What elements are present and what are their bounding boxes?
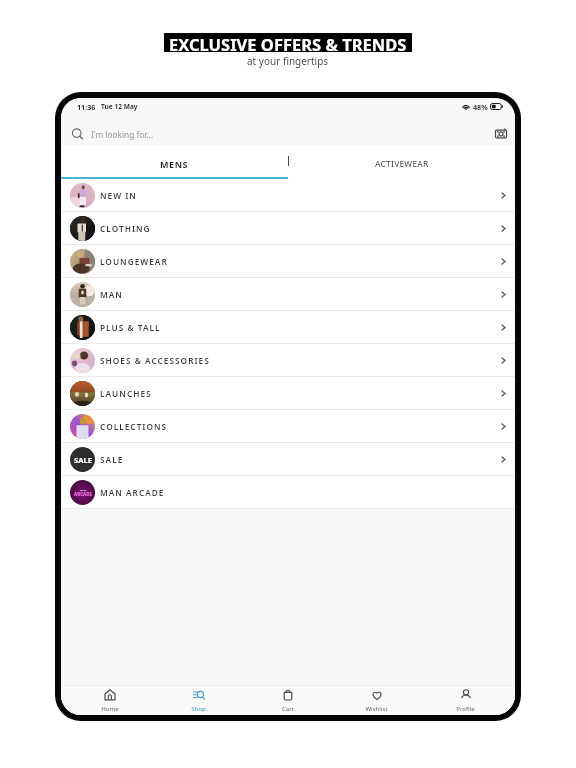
staticText: at your fingertips (247, 54, 329, 68)
button[interactable]: MENS (61, 150, 288, 177)
staticText: Cart (282, 704, 294, 712)
staticText: MAN (80, 488, 87, 491)
button[interactable]: CLOTHING (61, 212, 515, 244)
staticText: Wishlist (365, 704, 388, 712)
staticText: ACTIVEWEAR (375, 158, 429, 169)
staticText: SALE (100, 454, 124, 465)
staticText: Shop (191, 704, 206, 712)
button[interactable]: Shop (154, 686, 243, 715)
button[interactable]: SHOES & ACCESSORIES (61, 344, 515, 376)
staticText: Home (101, 704, 119, 712)
button[interactable]: Cart (243, 686, 332, 715)
staticText: LAUNCHES (100, 388, 152, 399)
button[interactable]: MAN (61, 278, 515, 310)
button[interactable]: Visual search (495, 128, 507, 140)
staticText: EXCLUSIVE OFFERS & TRENDS (169, 33, 407, 52)
staticText: CLOTHING (100, 223, 151, 234)
button[interactable]: I'm looking for... (69, 128, 495, 140)
button[interactable]: SALE (61, 443, 515, 475)
staticText: Profile (456, 704, 475, 712)
staticText: ARCADE (74, 491, 92, 497)
button[interactable]: Wishlist (332, 686, 421, 715)
button[interactable]: LAUNCHES (61, 377, 515, 409)
staticText: COLLECTIONS (100, 421, 168, 432)
staticText: I'm looking for... (91, 129, 154, 140)
staticText: MENS (160, 158, 189, 170)
button[interactable]: NEW IN (61, 179, 515, 211)
button[interactable]: Profile (421, 686, 510, 715)
staticText: MAN ARCADE (100, 487, 165, 498)
staticText: SHOES & ACCESSORIES (100, 355, 210, 366)
staticText: LOUNGEWEAR (100, 256, 168, 267)
staticText: MAN (100, 289, 123, 300)
staticText: NEW IN (100, 190, 137, 201)
button[interactable]: Home (66, 686, 154, 715)
staticText: Tue 12 May (101, 102, 138, 111)
staticText: PLUS & TALL (100, 322, 161, 333)
staticText: 48% (473, 102, 488, 112)
staticText: 11:36 (77, 102, 96, 112)
button[interactable]: COLLECTIONS (61, 410, 515, 442)
button[interactable]: PLUS & TALL (61, 311, 515, 343)
staticText: SALE (74, 455, 92, 465)
button[interactable]: LOUNGEWEAR (61, 245, 515, 277)
button[interactable]: MAN (61, 476, 515, 508)
button[interactable]: ACTIVEWEAR (288, 150, 515, 177)
